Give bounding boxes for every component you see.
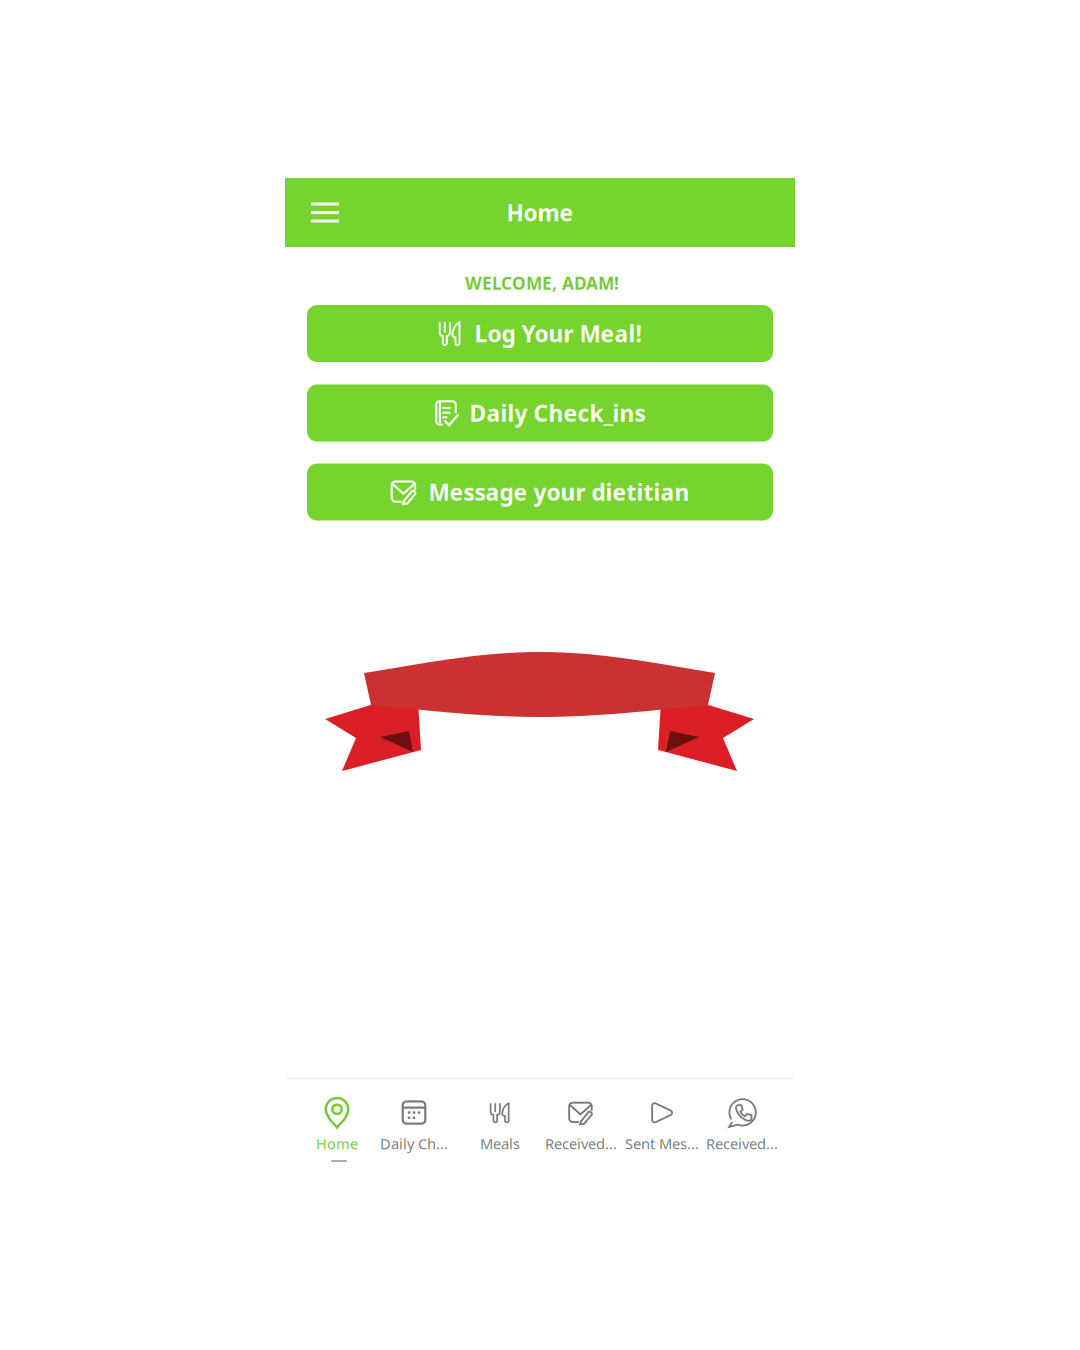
button[interactable]: Daily Check_ins [307, 384, 773, 441]
staticText: Home [506, 197, 573, 227]
staticText: Home [316, 1134, 358, 1153]
staticText: Received... [545, 1134, 617, 1153]
staticText: WELCOME, ADAM! [465, 271, 619, 294]
staticText: Received... [706, 1134, 778, 1153]
staticText: Sent Mes... [625, 1134, 699, 1153]
staticText: Log Your Meal! [474, 318, 641, 348]
staticText: Daily Ch... [380, 1134, 448, 1153]
staticText: Daily Check_ins [469, 398, 645, 428]
button[interactable]: Daily Ch... [374, 1097, 454, 1155]
button[interactable]: Message your dietitian [307, 463, 773, 520]
button[interactable]: Sent Mes... [622, 1097, 702, 1155]
button[interactable]: Meals [460, 1097, 540, 1155]
button[interactable]: Log Your Meal! [307, 305, 773, 362]
staticText: Meals [480, 1134, 520, 1153]
button[interactable]: Menu [285, 178, 339, 246]
button[interactable]: Home [297, 1097, 377, 1155]
button[interactable]: Received... [541, 1097, 621, 1155]
staticText: Message your dietitian [428, 477, 689, 507]
button[interactable]: Received... [702, 1097, 782, 1155]
